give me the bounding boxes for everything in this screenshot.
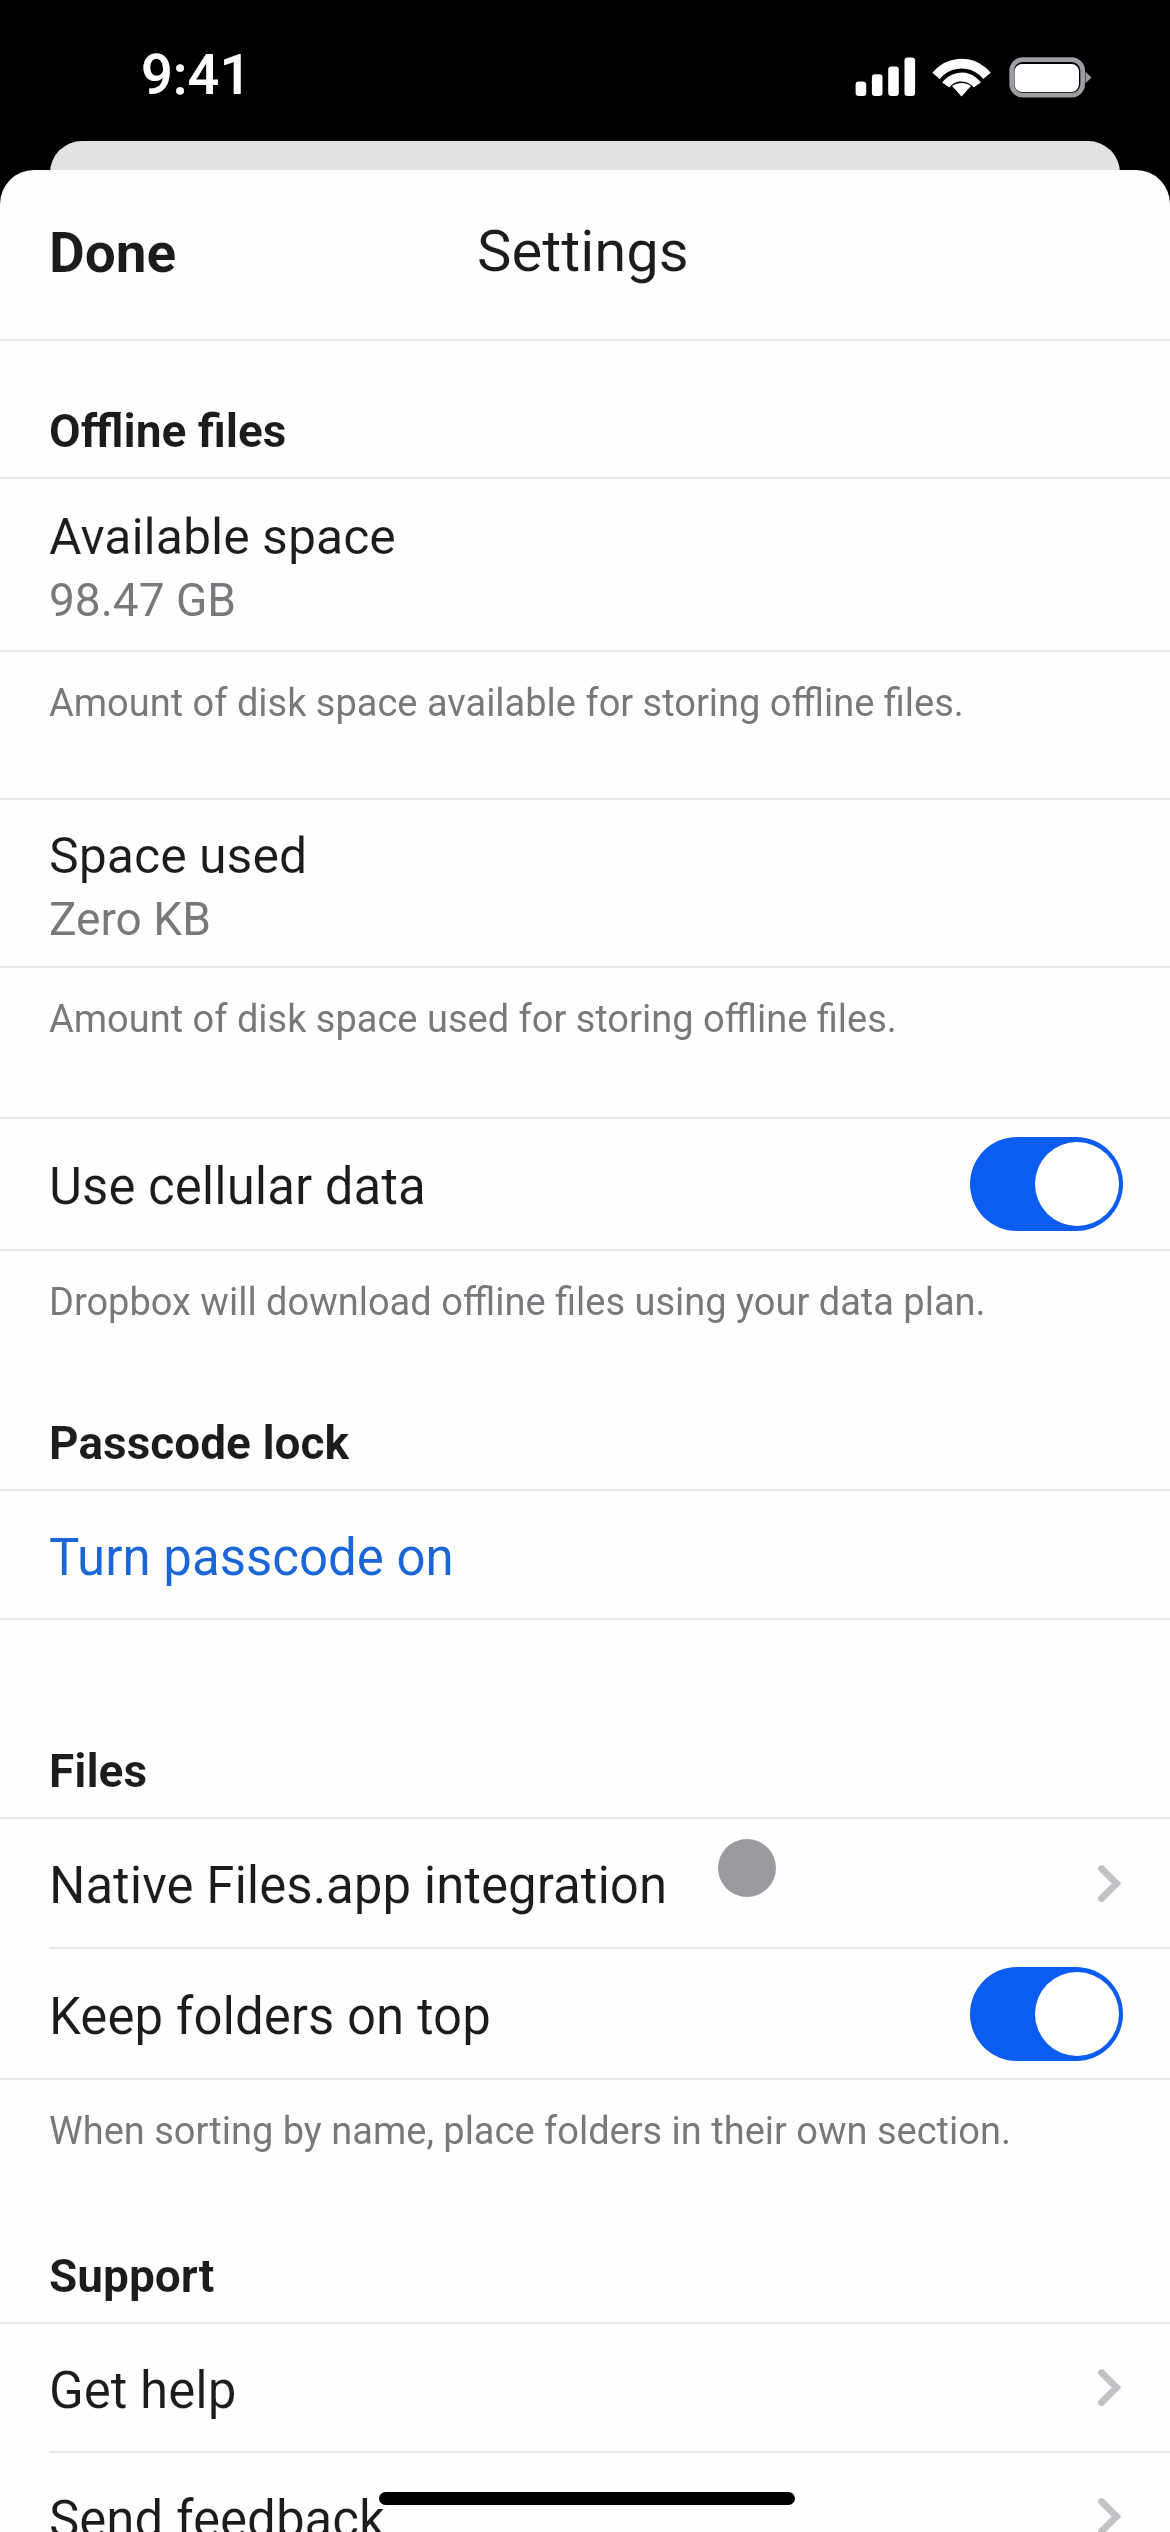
staticText: Keep folders on top xyxy=(49,1987,491,2047)
button[interactable]: Available space xyxy=(0,479,1170,650)
staticText: Settings xyxy=(477,217,689,285)
staticText: Files xyxy=(49,1744,148,1798)
staticText: Use cellular data xyxy=(49,1157,426,1217)
staticText: Get help xyxy=(49,2361,237,2421)
staticText: When sorting by name, place folders in t… xyxy=(49,2109,1011,2154)
button[interactable]: Native Files.app integration xyxy=(0,1819,1170,1947)
button[interactable]: Done xyxy=(20,200,206,310)
button[interactable]: Turn passcode on xyxy=(0,1491,1170,1618)
staticText: 98.47 GB xyxy=(49,573,236,627)
button[interactable]: Keep folders on top xyxy=(970,1967,1123,2061)
staticText: Passcode lock xyxy=(49,1416,350,1470)
button[interactable]: Use cellular data xyxy=(0,1119,1170,1249)
staticText: Space used xyxy=(49,827,308,886)
staticText: Amount of disk space available for stori… xyxy=(49,681,964,726)
staticText: Turn passcode on xyxy=(49,1528,454,1588)
button[interactable]: Get help xyxy=(0,2324,1170,2451)
staticText: Zero KB xyxy=(49,892,211,946)
staticText: Available space xyxy=(49,508,396,567)
button[interactable]: Send feedback xyxy=(0,2453,1170,2532)
staticText: Send feedback xyxy=(49,2490,385,2532)
staticText: Done xyxy=(49,221,177,285)
button[interactable]: Space used xyxy=(0,800,1170,966)
staticText: Native Files.app integration xyxy=(49,1856,668,1916)
staticText: Offline files xyxy=(49,404,287,458)
staticText: Amount of disk space used for storing of… xyxy=(49,997,897,1042)
button[interactable]: Keep folders on top xyxy=(0,1949,1170,2078)
button[interactable]: Use cellular data xyxy=(970,1137,1123,1231)
staticText: 9:41 xyxy=(141,42,252,108)
staticText: Dropbox will download offline files usin… xyxy=(49,1280,986,1325)
staticText: Support xyxy=(49,2249,215,2303)
